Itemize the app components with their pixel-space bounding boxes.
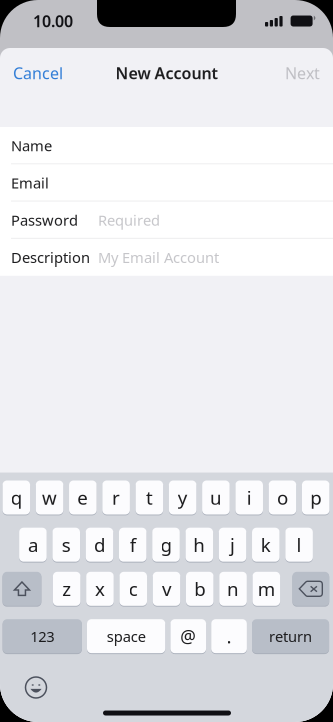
button[interactable]: y <box>169 480 196 514</box>
button[interactable]: m <box>252 572 280 606</box>
staticText: d <box>94 532 105 557</box>
staticText: 10.00 <box>33 10 73 32</box>
button[interactable]: e <box>69 480 97 514</box>
button[interactable]: k <box>252 528 280 562</box>
button[interactable]: Cancel <box>0 54 76 92</box>
staticText: e <box>77 485 88 510</box>
button[interactable]: return <box>252 619 329 653</box>
button[interactable]: p <box>302 480 329 514</box>
button[interactable]: h <box>185 528 213 562</box>
button[interactable]: space <box>87 619 165 653</box>
button[interactable]: a <box>19 528 47 562</box>
button[interactable]: t <box>136 480 163 514</box>
staticText: z <box>62 576 71 601</box>
button[interactable]: Name <box>0 127 333 164</box>
staticText: space <box>107 626 146 646</box>
button[interactable]: i <box>235 480 263 514</box>
staticText: New Account <box>115 62 217 84</box>
button[interactable]: j <box>219 528 246 562</box>
button[interactable]: g <box>152 528 180 562</box>
staticText: y <box>178 485 188 510</box>
staticText: m <box>258 576 275 601</box>
staticText: k <box>261 532 271 557</box>
staticText: return <box>269 626 312 646</box>
button[interactable]: 123 <box>3 619 82 653</box>
button[interactable]: Description <box>0 239 333 276</box>
staticText: i <box>247 485 252 510</box>
staticText: Password <box>11 210 78 230</box>
button[interactable]: u <box>202 480 230 514</box>
button[interactable]: c <box>119 572 147 606</box>
button[interactable]: v <box>153 572 180 606</box>
button[interactable]: l <box>285 528 313 562</box>
staticText: s <box>62 532 71 557</box>
staticText: Next <box>285 62 320 84</box>
button[interactable]: x <box>86 572 114 606</box>
button[interactable]: Email <box>0 164 333 201</box>
staticText: w <box>42 485 57 510</box>
staticText: p <box>310 485 321 510</box>
button[interactable]: Shift <box>2 572 41 606</box>
button[interactable]: d <box>86 528 113 562</box>
button[interactable]: w <box>36 480 63 514</box>
button[interactable]: Delete <box>292 572 329 606</box>
staticText: Email <box>11 173 49 193</box>
staticText: 123 <box>30 626 54 646</box>
staticText: n <box>227 576 239 601</box>
staticText: o <box>277 485 288 510</box>
button[interactable]: o <box>269 480 296 514</box>
button[interactable]: b <box>186 572 214 606</box>
staticText: Required <box>98 210 160 230</box>
staticText: c <box>129 576 138 601</box>
staticText: Name <box>11 136 52 155</box>
button[interactable]: . <box>211 619 247 653</box>
button[interactable]: r <box>102 480 130 514</box>
staticText: x <box>95 576 105 601</box>
staticText: h <box>193 532 205 557</box>
staticText: Description <box>11 247 90 267</box>
staticText: a <box>28 532 38 557</box>
staticText: l <box>297 532 302 557</box>
staticText: t <box>146 485 153 510</box>
button[interactable]: z <box>53 572 80 606</box>
staticText: r <box>112 485 120 510</box>
button[interactable]: n <box>219 572 247 606</box>
button[interactable]: @ <box>170 619 206 653</box>
staticText: My Email Account <box>98 247 219 267</box>
staticText: Cancel <box>13 62 63 84</box>
staticText: v <box>162 576 171 601</box>
button[interactable]: Next <box>272 54 333 92</box>
staticText: b <box>194 576 205 601</box>
button[interactable]: Emoji keyboard <box>25 677 46 698</box>
button[interactable]: Password <box>0 201 333 239</box>
button[interactable]: s <box>52 528 80 562</box>
staticText: f <box>130 532 136 557</box>
staticText: q <box>11 485 22 510</box>
staticText: . <box>226 624 231 649</box>
staticText: @ <box>180 625 196 648</box>
staticText: g <box>160 532 171 557</box>
button[interactable]: f <box>119 528 146 562</box>
staticText: u <box>210 485 222 510</box>
button[interactable]: q <box>2 480 30 514</box>
staticText: j <box>230 532 235 557</box>
